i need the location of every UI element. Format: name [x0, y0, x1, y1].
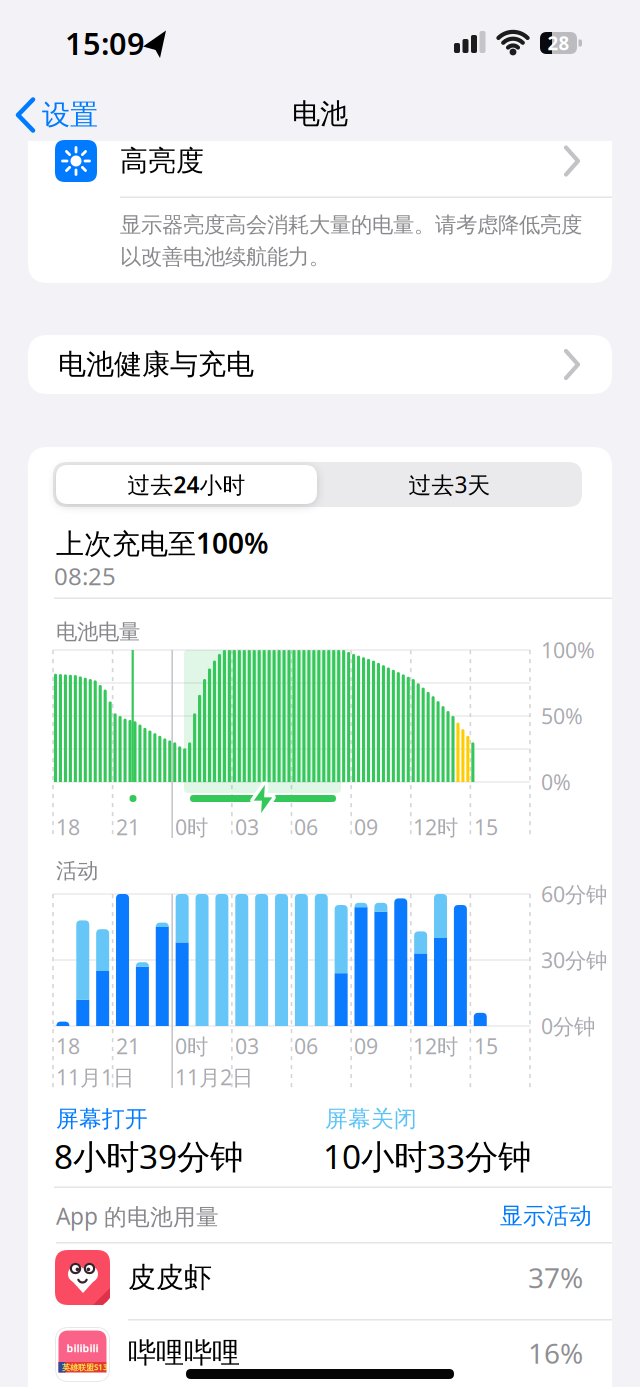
- button[interactable]: 过去24小时: [56, 465, 317, 504]
- button[interactable]: 设置: [10, 89, 140, 141]
- staticText: 15:09: [65, 23, 145, 63]
- staticText: 08:25: [54, 560, 116, 592]
- staticText: App 的电池用量: [56, 1201, 219, 1231]
- button[interactable]: 显示活动: [432, 1194, 592, 1238]
- staticText: 以改善电池续航能力。: [120, 244, 330, 270]
- staticText: 100%: [541, 636, 595, 664]
- staticText: 09: [354, 813, 378, 841]
- staticText: 18: [56, 1032, 80, 1060]
- staticText: 皮皮虾: [128, 1260, 212, 1295]
- staticText: 8小时39分钟: [54, 1134, 243, 1178]
- staticText: 显示器亮度高会消耗大量的电量。请考虑降低亮度: [120, 212, 582, 238]
- staticText: 11月1日: [56, 1063, 134, 1091]
- staticText: 12时: [413, 1032, 458, 1060]
- staticText: 06: [294, 813, 318, 841]
- staticText: 过去3天: [408, 469, 490, 499]
- staticText: 电池: [292, 97, 348, 131]
- staticText: 03: [235, 1032, 259, 1060]
- staticText: 活动: [56, 858, 98, 884]
- button[interactable]: 过去3天: [317, 462, 582, 507]
- staticText: bilibili: [66, 1341, 98, 1355]
- staticText: 21: [116, 1032, 140, 1060]
- staticText: 60分钟: [541, 880, 607, 908]
- staticText: 21: [116, 813, 140, 841]
- staticText: 过去24小时: [127, 469, 245, 499]
- staticText: 屏幕关闭: [325, 1105, 417, 1133]
- staticText: 0%: [541, 768, 571, 796]
- staticText: 12时: [413, 813, 458, 841]
- staticText: 09: [354, 1032, 378, 1060]
- staticText: 10小时33分钟: [323, 1134, 531, 1178]
- staticText: 英雄联盟S13: [62, 1362, 108, 1372]
- staticText: 电池健康与充电: [58, 347, 254, 382]
- staticText: 16%: [528, 1334, 583, 1372]
- staticText: 50%: [541, 702, 583, 730]
- staticText: 06: [294, 1032, 318, 1060]
- staticText: 37%: [528, 1259, 583, 1296]
- staticText: 15: [474, 813, 498, 841]
- staticText: 0时: [175, 1032, 208, 1060]
- button[interactable]: 电池健康与充电: [28, 335, 612, 394]
- staticText: 屏幕打开: [56, 1105, 148, 1133]
- staticText: 上次充电至100%: [56, 524, 269, 562]
- button[interactable]: 皮皮虾: [28, 1243, 612, 1312]
- staticText: 03: [235, 813, 259, 841]
- staticText: 11月2日: [175, 1063, 253, 1091]
- button[interactable]: 高亮度: [28, 140, 612, 196]
- button[interactable]: bilibili: [28, 1321, 612, 1387]
- staticText: 18: [56, 813, 80, 841]
- staticText: 设置: [42, 98, 98, 132]
- staticText: 高亮度: [120, 144, 204, 178]
- staticText: 显示活动: [500, 1202, 592, 1230]
- staticText: 0时: [175, 813, 208, 841]
- staticText: 0分钟: [541, 1012, 595, 1040]
- staticText: 28: [547, 31, 569, 55]
- staticText: 哔哩哔哩: [128, 1336, 240, 1370]
- staticText: 30分钟: [541, 946, 607, 974]
- staticText: 电池电量: [56, 619, 140, 645]
- staticText: 15: [474, 1032, 498, 1060]
